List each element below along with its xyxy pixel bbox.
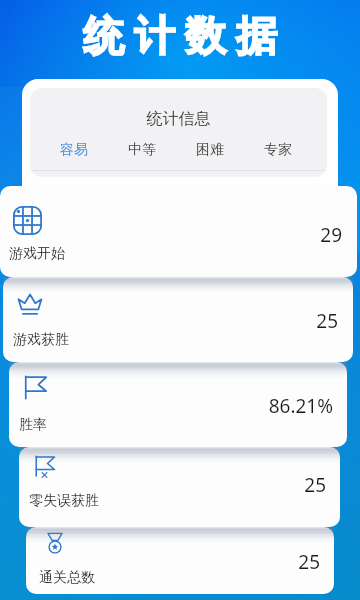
button[interactable] [3,277,353,362]
staticText: 86.21% [233,393,333,419]
staticText: 25 [238,308,338,334]
staticText: 游戏开始 [9,245,65,263]
button[interactable]: 中等 [108,133,176,166]
button[interactable] [0,186,357,277]
staticText: 胜率 [19,416,47,434]
staticText: 统计信息 [30,109,327,129]
button[interactable]: 困难 [176,133,244,166]
staticText: 容易 [60,141,88,159]
button[interactable]: 专家 [244,133,312,166]
button[interactable] [26,527,334,594]
staticText: 游戏获胜 [13,331,69,349]
staticText: 统计数据 [78,11,282,63]
staticText: 29 [242,222,342,248]
button[interactable]: 容易 [40,133,108,166]
staticText: 通关总数 [39,569,95,587]
staticText: 25 [220,549,320,575]
staticText: 困难 [196,141,224,159]
button[interactable] [9,362,347,447]
staticText: 专家 [264,141,292,159]
button[interactable] [19,447,340,527]
staticText: 中等 [128,141,156,159]
staticText: 零失误获胜 [29,492,99,510]
staticText: 25 [226,472,326,498]
